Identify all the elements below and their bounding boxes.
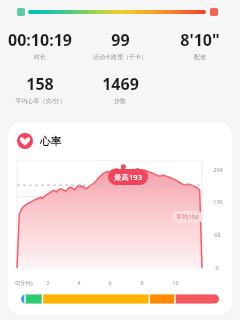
staticText: 10: [172, 279, 179, 286]
staticText: 8: [140, 279, 144, 286]
staticText: 步数: [114, 97, 126, 105]
staticText: 136: [213, 198, 223, 205]
staticText: 204: [213, 166, 223, 173]
button[interactable]: [21, 292, 219, 306]
staticText: 1469: [102, 73, 139, 95]
staticText: 平均心率（次/分）: [15, 97, 66, 105]
button[interactable]: 99: [80, 29, 160, 61]
button[interactable]: 158: [0, 73, 80, 105]
button[interactable]: 8'10": [160, 29, 240, 61]
other: Heart rate: [17, 133, 33, 149]
staticText: 2: [46, 279, 50, 286]
staticText: 最高193: [114, 172, 142, 182]
staticText: 4: [77, 279, 81, 286]
staticText: 68: [214, 231, 221, 238]
button[interactable]: 00:10:19: [0, 29, 80, 61]
staticText: 8'10": [180, 29, 220, 51]
staticText: 平均158: [176, 213, 199, 221]
staticText: 158: [26, 73, 54, 95]
staticText: 心率: [40, 135, 61, 148]
staticText: 0: [215, 264, 219, 271]
staticText: 时长: [34, 53, 46, 61]
staticText: 0(分钟): [15, 279, 33, 287]
staticText: 活动卡路里（千卡）: [93, 53, 147, 61]
staticText: 配速: [194, 53, 206, 61]
staticText: 99: [111, 29, 130, 51]
button[interactable]: 1469: [80, 73, 160, 105]
staticText: 6: [108, 279, 112, 286]
button[interactable]: Heart rate: [8, 123, 232, 315]
staticText: 00:10:19: [8, 29, 72, 51]
